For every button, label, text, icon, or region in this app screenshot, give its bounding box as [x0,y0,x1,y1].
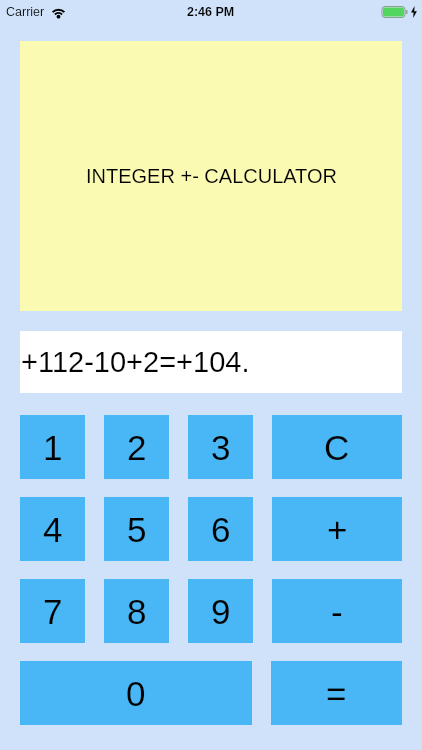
staticText: 9 [211,592,231,631]
staticText: - [331,592,343,631]
button[interactable]: + [272,497,402,561]
button[interactable]: - [272,579,402,643]
staticText: C [324,428,350,467]
staticText: 7 [43,592,63,631]
button[interactable]: 2 [104,415,169,479]
button[interactable]: 6 [188,497,253,561]
staticText: 5 [127,510,147,549]
button[interactable]: 5 [104,497,169,561]
staticText: Carrier [6,5,45,19]
staticText: 2 [127,428,147,467]
button[interactable]: 4 [20,497,85,561]
button[interactable]: 8 [104,579,169,643]
button[interactable]: 0 [20,661,252,725]
button[interactable]: = [271,661,402,725]
staticText: = [326,674,347,713]
staticText: 8 [127,592,147,631]
staticText: 3 [211,428,231,467]
button[interactable]: 1 [20,415,85,479]
staticText: 1 [43,428,63,467]
button[interactable]: C [272,415,402,479]
button[interactable]: 9 [188,579,253,643]
staticText: INTEGER +- CALCULATOR [86,165,337,187]
staticText: 4 [43,510,63,549]
staticText: + [327,510,348,549]
button[interactable]: 7 [20,579,85,643]
staticText: 6 [211,510,231,549]
button[interactable]: 3 [188,415,253,479]
staticText: +112-10+2=+104. [21,346,250,378]
staticText: 2:46 PM [187,5,235,19]
staticText: 0 [126,674,146,713]
